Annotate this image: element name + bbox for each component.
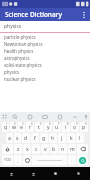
- button[interactable]: health physics: [0, 47, 90, 54]
- button[interactable]: a: [6, 133, 13, 143]
- staticText: .: [71, 158, 73, 163]
- staticText: c: [35, 146, 38, 153]
- staticText: 8: [67, 122, 69, 126]
- button[interactable]: More: [67, 112, 82, 121]
- staticText: health physics: [4, 48, 34, 54]
- button[interactable]: nuclear physics: [0, 75, 90, 82]
- button[interactable]: m: [68, 144, 76, 154]
- button[interactable]: w: [10, 122, 17, 132]
- staticText: 0: [85, 122, 87, 126]
- staticText: d: [24, 135, 28, 142]
- staticText: 6: [49, 122, 51, 126]
- staticText: b: [52, 146, 56, 153]
- staticText: Science Dictionary: [5, 10, 62, 19]
- staticText: h: [51, 135, 55, 142]
- button[interactable]: Hide keyboard: [0, 167, 22, 180]
- button[interactable]: physics: [0, 68, 90, 75]
- button[interactable]: .: [68, 155, 76, 165]
- button[interactable]: b: [50, 144, 58, 154]
- button[interactable]: h: [49, 133, 57, 143]
- button[interactable]: astrophysics: [0, 54, 90, 61]
- button[interactable]: Voice input: [82, 112, 90, 121]
- button[interactable]: More options: [77, 8, 90, 21]
- button[interactable]: Search: [8, 112, 22, 121]
- button[interactable]: p: [80, 122, 88, 132]
- button[interactable]: Back: [22, 167, 44, 180]
- staticText: 3: [22, 122, 24, 126]
- staticText: m: [70, 146, 75, 153]
- button[interactable]: Keyboard settings: [0, 112, 8, 121]
- button[interactable]: solid-state physics: [0, 61, 90, 68]
- staticText: v: [44, 146, 47, 153]
- staticText: w: [12, 124, 16, 131]
- staticText: x: [26, 146, 29, 153]
- button[interactable]: Space: [32, 155, 67, 165]
- staticText: solid-state physics: [4, 62, 42, 68]
- button[interactable]: Clipboard: [52, 112, 67, 121]
- staticText: ,: [17, 158, 19, 163]
- button[interactable]: d: [22, 133, 30, 143]
- button[interactable]: ,: [14, 155, 22, 165]
- button[interactable]: Recents: [67, 167, 90, 180]
- staticText: f: [34, 135, 36, 142]
- button[interactable]: t: [35, 122, 43, 132]
- staticText: 1: [6, 122, 8, 126]
- staticText: physics: [4, 23, 22, 30]
- staticText: Newtonian physics: [4, 41, 43, 47]
- staticText: ?123: [4, 158, 11, 162]
- button[interactable]: Search: [77, 155, 88, 165]
- button[interactable]: v: [41, 144, 49, 154]
- staticText: 4: [31, 122, 33, 126]
- staticText: i: [65, 124, 67, 131]
- button[interactable]: c: [32, 144, 40, 154]
- staticText: s: [16, 135, 19, 142]
- button[interactable]: r: [26, 122, 34, 132]
- staticText: 7: [58, 122, 60, 126]
- button[interactable]: o: [71, 122, 79, 132]
- button[interactable]: Shift: [2, 144, 13, 154]
- staticText: z: [17, 146, 20, 153]
- staticText: nuclear physics: [4, 76, 36, 82]
- staticText: p: [82, 124, 86, 131]
- button[interactable]: Backspace: [77, 144, 88, 154]
- button[interactable]: l: [76, 133, 84, 143]
- staticText: a: [8, 135, 11, 142]
- button[interactable]: Emoji: [23, 155, 31, 165]
- staticText: q: [4, 124, 8, 131]
- button[interactable]: particle physics: [0, 33, 90, 40]
- staticText: r: [29, 124, 32, 131]
- staticText: e: [20, 124, 23, 131]
- staticText: physics: [4, 69, 20, 75]
- button[interactable]: x: [23, 144, 31, 154]
- staticText: o: [73, 124, 77, 131]
- button[interactable]: Home: [44, 167, 67, 180]
- button[interactable]: e: [18, 122, 25, 132]
- button[interactable]: g: [40, 133, 48, 143]
- staticText: y: [47, 124, 50, 131]
- button[interactable]: Stickers: [22, 112, 37, 121]
- staticText: 9: [76, 122, 78, 126]
- button[interactable]: s: [14, 133, 21, 143]
- staticText: t: [38, 124, 40, 131]
- button[interactable]: Newtonian physics: [0, 40, 90, 47]
- button[interactable]: i: [62, 122, 70, 132]
- staticText: astrophysics: [4, 55, 30, 61]
- button[interactable]: u: [53, 122, 61, 132]
- button[interactable]: z: [14, 144, 22, 154]
- staticText: l: [79, 135, 81, 142]
- button[interactable]: k: [67, 133, 75, 143]
- button[interactable]: GIF: [37, 112, 52, 121]
- button[interactable]: n: [59, 144, 67, 154]
- staticText: n: [61, 146, 65, 153]
- staticText: 5: [40, 122, 42, 126]
- button[interactable]: y: [44, 122, 52, 132]
- button[interactable]: f: [31, 133, 39, 143]
- button[interactable]: physics: [0, 21, 90, 33]
- staticText: 2: [14, 122, 16, 126]
- button[interactable]: ?123: [2, 155, 13, 165]
- button[interactable]: j: [58, 133, 66, 143]
- staticText: k: [70, 135, 73, 142]
- staticText: j: [61, 135, 63, 142]
- staticText: u: [55, 124, 59, 131]
- button[interactable]: q: [2, 122, 9, 132]
